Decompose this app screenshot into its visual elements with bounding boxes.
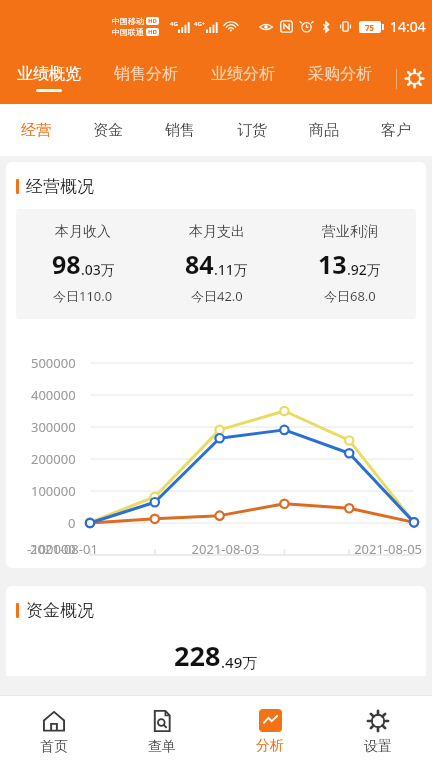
button[interactable]: 设置 bbox=[324, 696, 432, 768]
staticText: 销售分析 bbox=[114, 64, 178, 84]
button[interactable]: 业绩概览 bbox=[0, 52, 97, 104]
button[interactable]: 客户 bbox=[360, 104, 432, 156]
staticText: 销售 bbox=[165, 121, 195, 140]
staticText: 今日68.0 bbox=[324, 287, 376, 305]
staticText: .03万 bbox=[81, 260, 115, 279]
staticText: 300000 bbox=[31, 418, 76, 436]
staticText: 资金概况 bbox=[26, 600, 94, 621]
staticText: 14:04 bbox=[390, 17, 426, 36]
staticText: 100000 bbox=[31, 482, 76, 500]
staticText: 中国联通 bbox=[112, 27, 144, 37]
button[interactable]: 资金 bbox=[72, 104, 144, 156]
staticText: 98 bbox=[52, 247, 81, 281]
staticText: 订货 bbox=[237, 121, 267, 140]
staticText: 2021-08-05 bbox=[291, 540, 422, 558]
staticText: 400000 bbox=[31, 386, 76, 404]
staticText: 2021-08-01 bbox=[30, 540, 160, 558]
button[interactable]: 本月支出 bbox=[150, 223, 283, 305]
staticText: 2021-08-03 bbox=[160, 540, 291, 558]
staticText: 0 bbox=[68, 514, 76, 532]
staticText: 4G+ bbox=[194, 20, 206, 28]
button[interactable]: 经营 bbox=[0, 104, 72, 156]
staticText: 经营概况 bbox=[26, 176, 94, 197]
button[interactable]: 分析 bbox=[216, 696, 324, 768]
staticText: .49万 bbox=[221, 652, 258, 672]
button[interactable]: Settings bbox=[388, 52, 432, 104]
staticText: HD bbox=[148, 28, 157, 36]
button[interactable]: 商品 bbox=[288, 104, 360, 156]
button[interactable]: 销售 bbox=[144, 104, 216, 156]
staticText: 500000 bbox=[31, 354, 76, 372]
staticText: 采购分析 bbox=[308, 64, 372, 84]
button[interactable]: 采购分析 bbox=[291, 52, 388, 104]
staticText: 4G bbox=[170, 20, 178, 28]
staticText: 商品 bbox=[309, 121, 339, 140]
button[interactable]: 销售分析 bbox=[97, 52, 194, 104]
staticText: 13 bbox=[318, 247, 347, 281]
staticText: 今日110.0 bbox=[53, 287, 113, 305]
staticText: 业绩分析 bbox=[211, 64, 275, 84]
staticText: 本月支出 bbox=[189, 223, 245, 241]
staticText: .92万 bbox=[347, 260, 381, 279]
staticText: 查单 bbox=[148, 738, 176, 756]
staticText: 75 bbox=[365, 22, 375, 33]
button[interactable]: 查单 bbox=[108, 696, 216, 768]
button[interactable]: 业绩分析 bbox=[194, 52, 291, 104]
button[interactable]: 首页 bbox=[0, 696, 108, 768]
staticText: 分析 bbox=[256, 737, 284, 755]
staticText: 客户 bbox=[381, 121, 411, 140]
staticText: 228 bbox=[174, 637, 221, 674]
staticText: 资金 bbox=[93, 121, 123, 140]
staticText: 84 bbox=[185, 247, 214, 281]
staticText: 中国移动 bbox=[112, 16, 144, 26]
staticText: -100000 bbox=[27, 540, 76, 558]
button[interactable]: 营业利润 bbox=[283, 223, 416, 305]
staticText: .11万 bbox=[214, 260, 248, 279]
staticText: 首页 bbox=[40, 738, 68, 756]
staticText: HD bbox=[148, 17, 157, 25]
button[interactable]: 订货 bbox=[216, 104, 288, 156]
staticText: 200000 bbox=[31, 450, 76, 468]
button[interactable]: 本月收入 bbox=[16, 223, 150, 305]
staticText: 营业利润 bbox=[322, 223, 378, 241]
staticText: 今日42.0 bbox=[191, 287, 243, 305]
staticText: 本月收入 bbox=[55, 223, 111, 241]
staticText: 设置 bbox=[364, 738, 392, 756]
staticText: 业绩概览 bbox=[17, 64, 81, 84]
staticText: 经营 bbox=[21, 121, 51, 140]
